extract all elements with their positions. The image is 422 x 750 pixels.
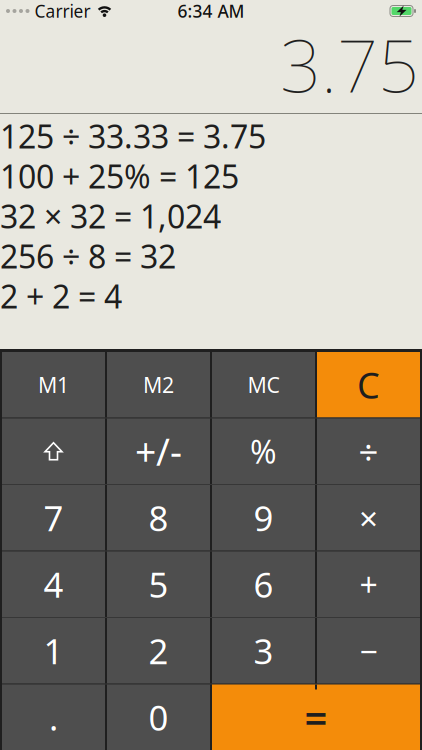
staticText: M2 [143,371,174,399]
button[interactable]: 0 [107,684,210,750]
staticText: M1 [38,371,69,399]
staticText: C [357,361,380,409]
staticText: ÷ [358,428,378,474]
button[interactable]: × [317,485,420,550]
button[interactable]: ÷ [317,418,420,484]
button[interactable]: M2 [107,352,210,417]
staticText: 4 [43,561,63,607]
staticText: + [359,563,377,605]
button[interactable]: MC [212,352,315,417]
staticText: 0 [148,694,168,740]
staticText: 2 [148,628,168,674]
staticText: 2 + 2 = 4 [0,275,122,317]
staticText: 6:34 AM [177,0,244,22]
staticText: 32 × 32 = 1,024 [0,195,221,237]
staticText: +/- [135,426,182,476]
staticText: × [359,496,378,540]
staticText: − [359,629,377,672]
button[interactable]: 1 [2,618,105,683]
staticText: 8 [148,495,168,541]
staticText: 9 [253,495,273,541]
button[interactable]: − [317,618,420,683]
staticText: 125 ÷ 33.33 = 3.75 [0,115,266,157]
staticText: 100 + 25% = 125 [0,155,239,197]
button[interactable]: 3 [212,618,315,683]
button[interactable]: . [2,684,105,750]
button[interactable] [2,418,105,484]
staticText: . [49,694,58,740]
button[interactable]: C [317,352,420,417]
staticText: = [304,691,327,744]
button[interactable]: = [212,684,420,750]
button[interactable]: 6 [212,551,315,617]
button[interactable]: 7 [2,485,105,550]
button[interactable]: % [212,418,315,484]
staticText: 7 [43,495,63,541]
staticText: 3.75 [280,17,419,112]
staticText: 256 ÷ 8 = 32 [0,235,176,277]
button[interactable]: +/- [107,418,210,484]
button[interactable]: 8 [107,485,210,550]
staticText: Carrier [34,0,90,22]
button[interactable]: 2 [107,618,210,683]
button[interactable]: + [317,551,420,617]
staticText: 6 [253,561,273,607]
staticText: 1 [43,628,63,674]
staticText: % [250,430,277,472]
button[interactable]: 9 [212,485,315,550]
staticText: 5 [148,561,168,607]
staticText: MC [247,371,279,399]
button[interactable]: 5 [107,551,210,617]
button[interactable]: M1 [2,352,105,417]
staticText: 3 [253,628,273,674]
button[interactable]: 4 [2,551,105,617]
